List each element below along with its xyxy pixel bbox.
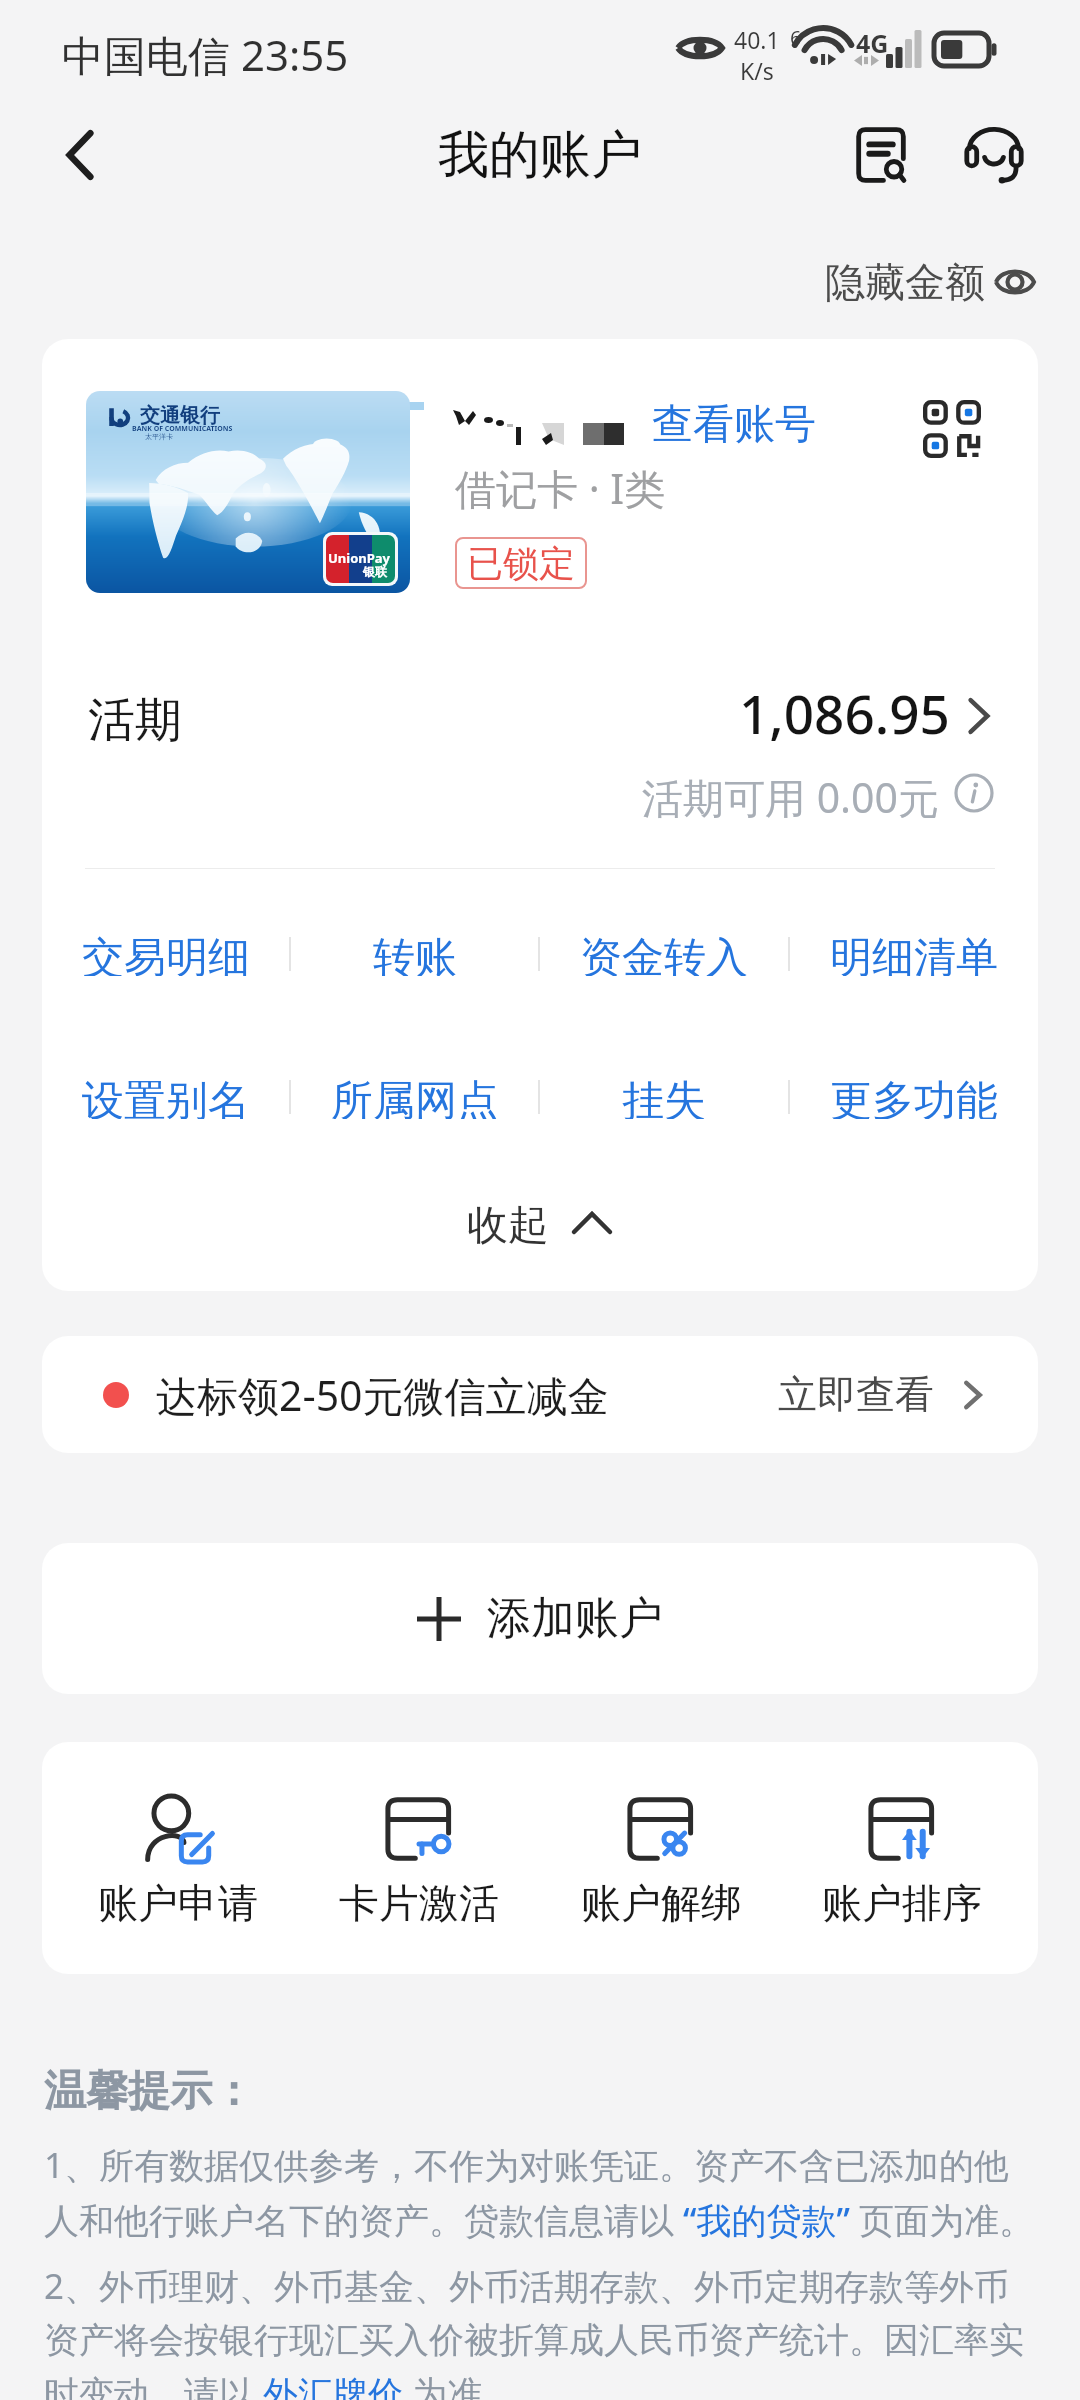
- staticText: 1、所有数据仅供参考，不作为对账凭证。资产不含已添加的他人和他行账户名下的资产。…: [44, 2141, 1042, 2243]
- staticText: 6: [790, 24, 802, 51]
- staticText: 卡片激活: [339, 1878, 499, 1928]
- staticText: 交通银行: [140, 403, 220, 428]
- button[interactable]: 资金转入: [580, 932, 748, 976]
- button[interactable]: Bill records: [835, 109, 927, 201]
- button[interactable]: 更多功能: [830, 1075, 998, 1119]
- button[interactable]: 所属网点: [331, 1075, 499, 1119]
- button[interactable]: QR code: [912, 389, 992, 469]
- button[interactable]: 转账: [373, 932, 457, 976]
- staticText: 4G: [856, 26, 889, 60]
- staticText: UnionPay: [328, 549, 391, 567]
- staticText: 账户申请: [98, 1878, 258, 1928]
- staticText: 中国电信 23:55: [62, 26, 349, 83]
- staticText: 40.1: [734, 24, 780, 55]
- button[interactable]: 收起: [42, 1200, 1038, 1246]
- staticText: K/s: [740, 55, 774, 86]
- staticText: 立即查看: [778, 1370, 934, 1419]
- button[interactable]: 账户排序: [782, 1742, 1022, 1974]
- staticText: 隐藏金额: [825, 257, 985, 307]
- button[interactable]: 添加账户: [42, 1543, 1038, 1694]
- staticText: 账户排序: [822, 1878, 982, 1928]
- button[interactable]: [62, 669, 1018, 839]
- button[interactable]: Back: [36, 110, 126, 200]
- staticText: 已锁定: [467, 541, 575, 586]
- staticText: 达标领2-50元微信立减金: [156, 1367, 609, 1423]
- button[interactable]: 查看账号: [646, 393, 822, 457]
- staticText: 借记卡 · I类: [455, 460, 666, 516]
- staticText: 银联: [363, 564, 387, 579]
- button[interactable]: 账户申请: [58, 1742, 298, 1974]
- staticText: BANK OF COMMUNICATIONS: [132, 424, 233, 434]
- button[interactable]: 卡片激活: [299, 1742, 539, 1974]
- button[interactable]: 隐藏金额: [811, 247, 1048, 317]
- button[interactable]: 达标领2-50元微信立减金: [42, 1336, 1038, 1453]
- button[interactable]: 挂失: [622, 1075, 706, 1119]
- staticText: 我的账户: [438, 123, 642, 187]
- staticText: 温馨提示：: [44, 2065, 254, 2118]
- staticText: 活期: [88, 691, 182, 750]
- staticText: 账户解绑: [581, 1878, 741, 1928]
- button[interactable]: Customer service: [948, 109, 1040, 201]
- staticText: 2、外币理财、外币基金、外币活期存款、外币定期存款等外币资产将会按银行现汇买入价…: [44, 2262, 1042, 2400]
- staticText: 添加账户: [487, 1591, 663, 1646]
- staticText: 查看账号: [652, 399, 816, 451]
- button[interactable]: 交易明细: [82, 932, 250, 976]
- button[interactable]: 设置别名: [82, 1075, 250, 1119]
- staticText: 活期可用 0.00元: [642, 769, 940, 825]
- staticText: 收起: [467, 1200, 549, 1246]
- button[interactable]: 明细清单: [830, 932, 998, 976]
- staticText: 太平洋卡: [145, 432, 173, 441]
- button[interactable]: 账户解绑: [541, 1742, 781, 1974]
- staticText: 1,086.95: [739, 677, 950, 749]
